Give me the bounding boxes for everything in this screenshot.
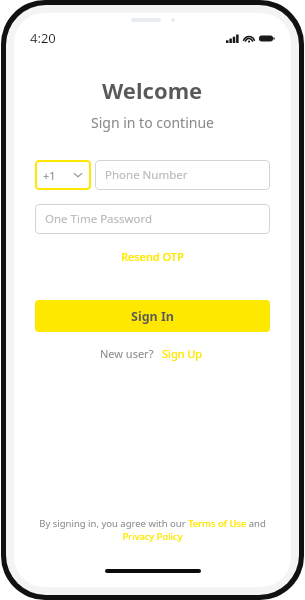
staticText: One Time Password [45,211,153,227]
other: Wi-Fi [243,33,255,43]
staticText: Sign in to continue [91,113,214,132]
button[interactable]: Sign In [35,300,270,332]
staticText: New user? [100,346,154,361]
button[interactable]: +1 [35,160,91,190]
other: Battery [259,34,275,43]
other: Cellular signal [226,33,239,43]
button[interactable]: One Time Password [35,204,270,234]
staticText: +1 [43,168,56,183]
staticText: Resend OTP [121,249,184,264]
button[interactable]: Resend OTP [115,247,190,266]
button[interactable]: Sign Up [160,344,205,363]
button[interactable]: By signing in, you agree with our Terms … [34,517,271,543]
staticText: By signing in, you agree with our Terms … [34,517,271,543]
staticText: 4:20 [30,29,56,47]
staticText: Welcome [102,75,203,105]
staticText: Sign In [131,308,174,325]
staticText: Sign Up [162,346,203,361]
staticText: Phone Number [105,167,188,183]
button[interactable]: Phone Number [95,160,270,190]
